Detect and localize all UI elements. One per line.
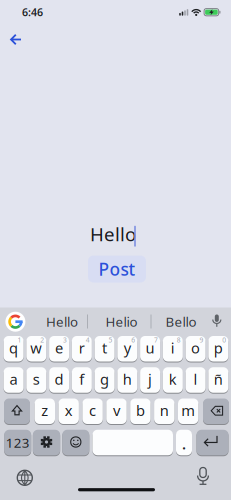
button[interactable] xyxy=(15,468,35,488)
staticText: r xyxy=(79,338,85,357)
button[interactable]: l xyxy=(186,367,206,393)
staticText: ñ xyxy=(214,369,223,389)
button[interactable]: z xyxy=(35,398,55,424)
button[interactable]: . xyxy=(176,429,192,456)
button[interactable]: Helio xyxy=(94,308,149,334)
button[interactable] xyxy=(62,429,89,456)
staticText: l xyxy=(194,369,198,389)
button[interactable]: a xyxy=(4,367,24,393)
staticText: j xyxy=(148,369,152,389)
staticText: n xyxy=(160,400,169,420)
staticText: c xyxy=(89,400,96,420)
button[interactable]: s xyxy=(26,367,46,393)
button[interactable]: q xyxy=(4,335,24,362)
staticText: e xyxy=(55,338,63,357)
button[interactable] xyxy=(4,311,26,333)
button[interactable]: n xyxy=(154,398,174,424)
staticText: 4 xyxy=(86,336,90,344)
staticText: g xyxy=(100,369,109,389)
staticText: 6:46 xyxy=(22,5,43,19)
button[interactable]: r xyxy=(72,335,92,362)
button[interactable]: Bello xyxy=(153,308,208,334)
staticText: 0 xyxy=(222,336,226,344)
button[interactable]: j xyxy=(140,367,160,393)
button[interactable] xyxy=(33,429,60,456)
button[interactable]: y xyxy=(117,335,137,362)
button[interactable]: t xyxy=(95,335,115,362)
button[interactable]: u xyxy=(140,335,160,362)
staticText: Hello xyxy=(90,222,136,246)
staticText: s xyxy=(33,369,40,389)
button[interactable]: o xyxy=(186,335,206,362)
staticText: m xyxy=(181,400,195,420)
button[interactable]: g xyxy=(95,367,115,393)
button[interactable] xyxy=(4,398,30,424)
button[interactable] xyxy=(203,398,229,424)
staticText: h xyxy=(123,369,132,389)
button[interactable]: v xyxy=(106,398,127,424)
button[interactable]: Hello xyxy=(34,308,89,334)
staticText: k xyxy=(169,369,177,389)
staticText: f xyxy=(79,369,84,389)
button[interactable]: 123 xyxy=(4,429,31,456)
button[interactable]: m xyxy=(178,398,198,424)
button[interactable]: k xyxy=(163,367,183,393)
button[interactable]: h xyxy=(117,367,137,393)
staticText: Bello xyxy=(165,313,196,330)
button[interactable]: ñ xyxy=(208,367,228,393)
staticText: i xyxy=(171,338,175,357)
staticText: v xyxy=(113,400,120,420)
button[interactable]: w xyxy=(26,335,46,362)
staticText: 5 xyxy=(109,336,113,344)
button[interactable]: c xyxy=(82,398,103,424)
button[interactable]: e xyxy=(49,335,69,362)
staticText: z xyxy=(41,400,48,420)
button[interactable]: Post xyxy=(88,255,146,282)
staticText: 3 xyxy=(63,336,67,344)
button[interactable]: i xyxy=(163,335,183,362)
button[interactable] xyxy=(195,465,211,487)
staticText: Helio xyxy=(105,313,137,330)
staticText: 8 xyxy=(177,336,181,344)
staticText: . xyxy=(182,434,186,453)
button[interactable] xyxy=(92,429,173,456)
button[interactable]: d xyxy=(49,367,69,393)
staticText: 6 xyxy=(131,336,135,344)
staticText: w xyxy=(30,338,42,357)
staticText: a xyxy=(10,369,18,389)
staticText: d xyxy=(55,369,64,389)
staticText: 9 xyxy=(200,336,204,344)
button[interactable] xyxy=(209,310,225,332)
button[interactable]: f xyxy=(72,367,92,393)
staticText: 123 xyxy=(6,434,30,451)
button[interactable]: p xyxy=(208,335,228,362)
staticText: 2 xyxy=(40,336,44,344)
staticText: 7 xyxy=(154,336,158,344)
staticText: x xyxy=(65,400,73,420)
staticText: Post xyxy=(98,257,135,280)
staticText: t xyxy=(102,338,107,357)
button[interactable] xyxy=(196,429,228,456)
staticText: 1 xyxy=(18,336,22,344)
staticText: u xyxy=(146,338,155,357)
staticText: o xyxy=(191,338,200,357)
button[interactable]: x xyxy=(58,398,79,424)
staticText: Hello xyxy=(46,313,78,330)
staticText: y xyxy=(124,338,131,357)
staticText: p xyxy=(214,338,223,357)
button[interactable]: b xyxy=(130,398,151,424)
staticText: q xyxy=(9,338,18,357)
button[interactable] xyxy=(6,30,26,48)
staticText: b xyxy=(136,400,145,420)
